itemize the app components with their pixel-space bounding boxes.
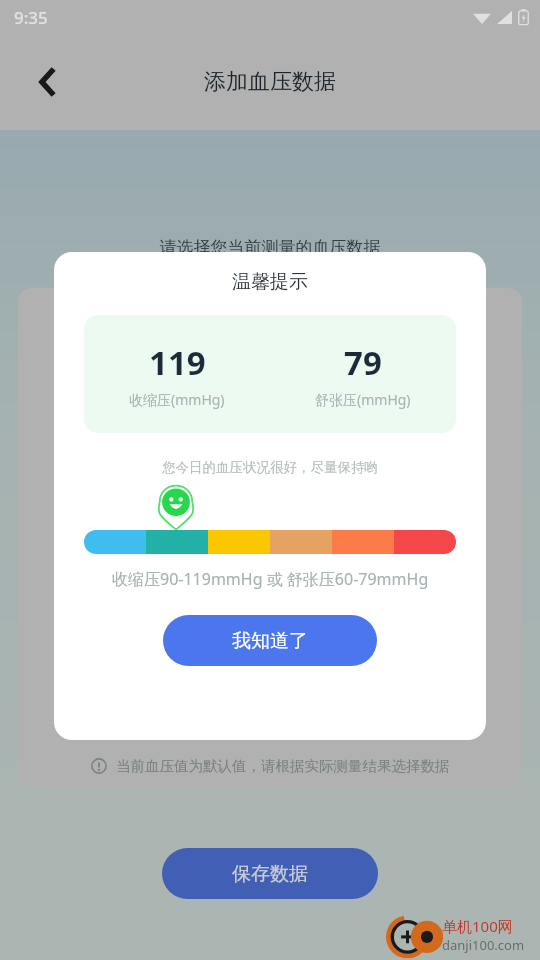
staticText: 当前血压值为默认值，请根据实际测量结果选择数据 [116,757,450,775]
button[interactable]: 保存数据 [162,848,378,899]
staticText: 9:35 [14,6,48,29]
staticText: 保存数据 [232,862,308,886]
button[interactable]: 我知道了 [163,615,377,666]
staticText: 请选择您当前测量的血压数据 [0,237,540,258]
staticText: danji100.com [442,936,525,954]
staticText: 添加血压数据 [204,68,336,96]
staticText: 您今日的血压状况很好，尽量保持哟 [162,459,378,476]
button[interactable]: 返回 [26,60,70,104]
staticText: 温馨提示 [232,270,308,294]
staticText: 119 [149,340,206,385]
staticText: 舒张压(mmHg) [315,390,411,409]
staticText: 单机100网 [442,916,513,936]
staticText: 我知道了 [232,629,308,653]
staticText: 收缩压(mmHg) [129,390,225,409]
staticText: 收缩压90-119mmHg 或 舒张压60-79mmHg [112,568,429,590]
staticText: 79 [344,340,382,385]
